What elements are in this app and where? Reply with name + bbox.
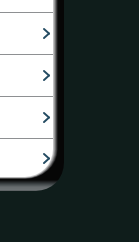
- button[interactable]: Open: [0, 54, 53, 96]
- button[interactable]: Open: [0, 96, 53, 138]
- other: Open: [44, 29, 49, 38]
- other: Open: [44, 71, 49, 80]
- button[interactable]: Open: [0, 12, 53, 54]
- button[interactable]: Open: [0, 138, 53, 177]
- other: Open: [44, 113, 49, 122]
- other: Open: [44, 154, 49, 163]
